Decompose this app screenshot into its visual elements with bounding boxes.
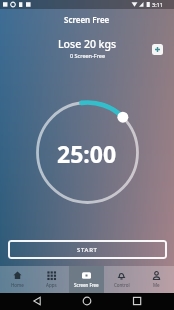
staticText: Screen Free (64, 14, 110, 25)
button[interactable]: Screen Free (69, 266, 104, 293)
button[interactable] (0, 293, 58, 310)
button[interactable]: Me (139, 266, 174, 293)
button[interactable]: Home (0, 266, 34, 293)
staticText: START (77, 246, 98, 254)
staticText: Lose 20 kgs (58, 37, 117, 51)
staticText: Home (11, 282, 24, 288)
staticText: Screen Free (74, 282, 99, 288)
button[interactable] (116, 293, 174, 310)
button[interactable]: Control (104, 266, 139, 293)
staticText: Me (153, 282, 160, 288)
button[interactable] (58, 293, 116, 310)
staticText: 25:00 (57, 138, 117, 169)
button[interactable]: Apps (34, 266, 69, 293)
staticText: Control (114, 282, 130, 288)
staticText: Apps (46, 282, 57, 288)
button[interactable] (152, 44, 163, 55)
staticText: 0 Screen-Free (70, 52, 105, 59)
staticText: 3:11 (152, 1, 163, 8)
button[interactable]: START (8, 240, 167, 259)
